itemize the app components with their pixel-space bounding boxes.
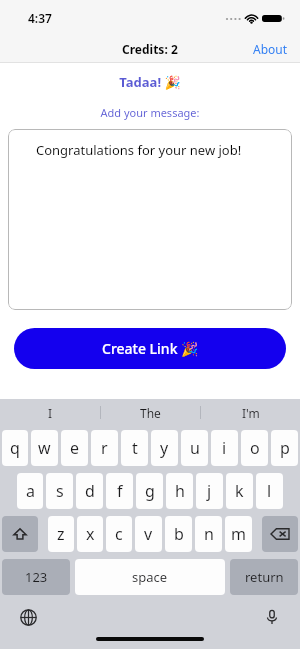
button[interactable]: l	[256, 473, 283, 509]
button[interactable]: w	[31, 430, 58, 466]
staticText: i	[222, 437, 227, 459]
button[interactable]: Shift	[2, 516, 38, 552]
staticText: c	[115, 523, 123, 545]
button[interactable]: v	[135, 516, 162, 552]
button[interactable]: f	[106, 473, 133, 509]
staticText: 4:37	[28, 10, 52, 26]
staticText: y	[160, 437, 169, 459]
staticText: Credits: 2	[122, 41, 178, 57]
button[interactable]: x	[77, 516, 103, 552]
button[interactable]: n	[195, 516, 222, 552]
staticText: Congratulations for your new job!	[36, 141, 242, 159]
button[interactable]: space	[75, 559, 225, 595]
staticText: l	[267, 480, 272, 502]
staticText: 123	[25, 568, 48, 586]
staticText: d	[85, 480, 95, 502]
staticText: s	[56, 480, 64, 502]
button[interactable]: About	[241, 37, 300, 61]
button[interactable]: Backspace	[262, 516, 298, 552]
staticText: v	[144, 523, 153, 545]
button[interactable]: p	[271, 430, 298, 466]
button[interactable]: s	[46, 473, 73, 509]
button[interactable]: z	[48, 516, 74, 552]
button[interactable]: c	[106, 516, 132, 552]
button[interactable]: Create Link 🎉	[14, 328, 286, 369]
staticText: f	[117, 480, 123, 502]
staticText: e	[70, 437, 80, 459]
button[interactable]: t	[121, 430, 148, 466]
button[interactable]: 123	[2, 559, 70, 595]
button[interactable]: b	[165, 516, 192, 552]
staticText: b	[174, 523, 184, 545]
staticText: Add your message:	[0, 105, 300, 120]
staticText: j	[207, 480, 212, 502]
staticText: o	[250, 437, 260, 459]
button[interactable]: i	[211, 430, 238, 466]
staticText: q	[10, 437, 20, 459]
button[interactable]: Dictation	[258, 603, 286, 631]
button[interactable]: r	[91, 430, 118, 466]
button[interactable]: h	[166, 473, 193, 509]
button[interactable]: I'm	[201, 399, 300, 426]
staticText: The	[140, 405, 161, 421]
staticText: k	[235, 480, 244, 502]
staticText: m	[231, 523, 246, 545]
staticText: x	[86, 523, 95, 545]
button[interactable]: j	[196, 473, 223, 509]
button[interactable]: o	[241, 430, 268, 466]
staticText: Create Link 🎉	[102, 339, 199, 358]
staticText: u	[190, 437, 200, 459]
staticText: z	[57, 523, 65, 545]
button[interactable]: e	[61, 430, 88, 466]
button[interactable]: d	[76, 473, 103, 509]
staticText: h	[175, 480, 185, 502]
staticText: r	[101, 437, 108, 459]
staticText: n	[204, 523, 214, 545]
staticText: I'm	[242, 405, 260, 421]
button[interactable]: g	[136, 473, 163, 509]
staticText: g	[145, 480, 155, 502]
button[interactable]: I	[0, 399, 100, 426]
staticText: t	[132, 437, 138, 459]
staticText: w	[38, 437, 51, 459]
staticText: p	[280, 437, 290, 459]
staticText: space	[132, 568, 168, 586]
button[interactable]: y	[151, 430, 178, 466]
button[interactable]: k	[226, 473, 253, 509]
button[interactable]: u	[181, 430, 208, 466]
button[interactable]: m	[225, 516, 252, 552]
button[interactable]: Change keyboard language	[14, 603, 42, 631]
button[interactable]: Congratulations for your new job!	[8, 129, 292, 310]
staticText: a	[26, 480, 35, 502]
button[interactable]: The	[101, 399, 200, 426]
button[interactable]: q	[2, 430, 28, 466]
staticText: Tadaa! 🎉	[0, 73, 300, 91]
staticText: About	[253, 41, 288, 57]
button[interactable]: return	[230, 559, 298, 595]
staticText: return	[245, 568, 284, 586]
button[interactable]: a	[17, 473, 43, 509]
staticText: I	[48, 405, 53, 421]
